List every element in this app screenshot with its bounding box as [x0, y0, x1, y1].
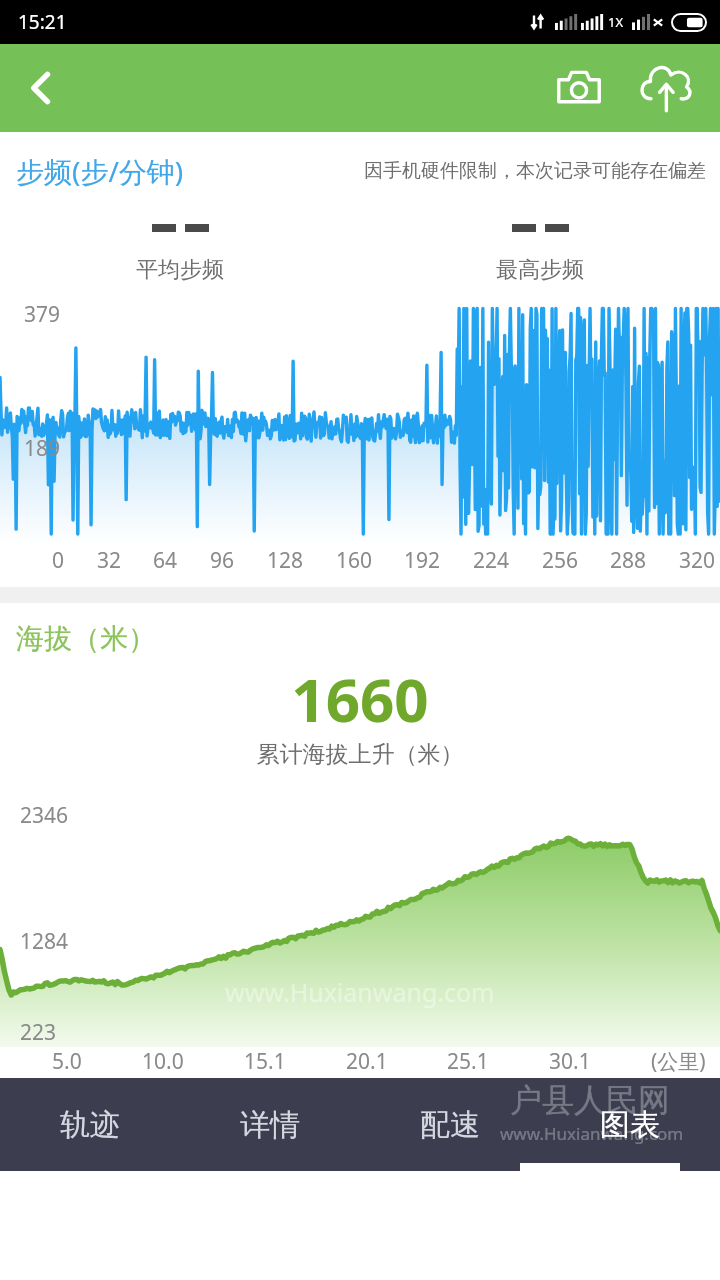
- staticText: 2346: [20, 801, 69, 830]
- staticText: 64: [153, 546, 178, 575]
- staticText: 20.1: [346, 1047, 388, 1076]
- button[interactable]: Back: [6, 53, 76, 123]
- button[interactable]: Upload to cloud: [628, 51, 702, 125]
- staticText: 256: [542, 546, 579, 575]
- staticText: 轨迹: [60, 1106, 120, 1144]
- staticText: 户县人民网: [510, 1080, 670, 1120]
- staticText: 海拔（米）: [16, 621, 156, 656]
- staticText: 128: [267, 546, 304, 575]
- staticText: 25.1: [447, 1047, 489, 1076]
- staticText: 223: [20, 1018, 57, 1047]
- staticText: www.Huxianwang.com: [500, 1122, 684, 1145]
- staticText: 最高步频: [496, 256, 584, 284]
- staticText: 96: [210, 546, 235, 575]
- staticText: 15.1: [244, 1047, 286, 1076]
- staticText: (公里): [651, 1047, 706, 1076]
- staticText: 累计海拔上升（米）: [0, 740, 720, 769]
- button[interactable]: Camera: [544, 53, 614, 123]
- button[interactable]: 配速: [360, 1078, 540, 1171]
- staticText: 10.0: [142, 1047, 184, 1076]
- staticText: 1660: [0, 658, 720, 740]
- staticText: 平均步频: [136, 256, 224, 284]
- staticText: 步频(步/分钟): [16, 152, 184, 190]
- staticText: 因手机硬件限制，本次记录可能存在偏差: [364, 159, 706, 183]
- staticText: 0: [52, 546, 65, 575]
- staticText: 192: [404, 546, 441, 575]
- staticText: 160: [336, 546, 373, 575]
- button[interactable]: 轨迹: [0, 1078, 180, 1171]
- staticText: 15:21: [18, 9, 67, 35]
- staticText: 5.0: [52, 1047, 82, 1076]
- staticText: 320: [679, 546, 716, 575]
- button[interactable]: 详情: [180, 1078, 360, 1171]
- staticText: www.Huxianwang.com: [225, 975, 495, 1009]
- staticText: 224: [473, 546, 510, 575]
- staticText: 图表: [600, 1106, 660, 1144]
- staticText: 详情: [240, 1106, 300, 1144]
- staticText: 1284: [20, 927, 69, 956]
- staticText: 288: [610, 546, 647, 575]
- staticText: 1X: [608, 13, 624, 31]
- staticText: 32: [97, 546, 122, 575]
- button[interactable]: 图表: [540, 1078, 720, 1171]
- staticText: 配速: [420, 1106, 480, 1144]
- staticText: 379: [24, 300, 61, 329]
- staticText: 189: [24, 434, 61, 463]
- staticText: 30.1: [549, 1047, 591, 1076]
